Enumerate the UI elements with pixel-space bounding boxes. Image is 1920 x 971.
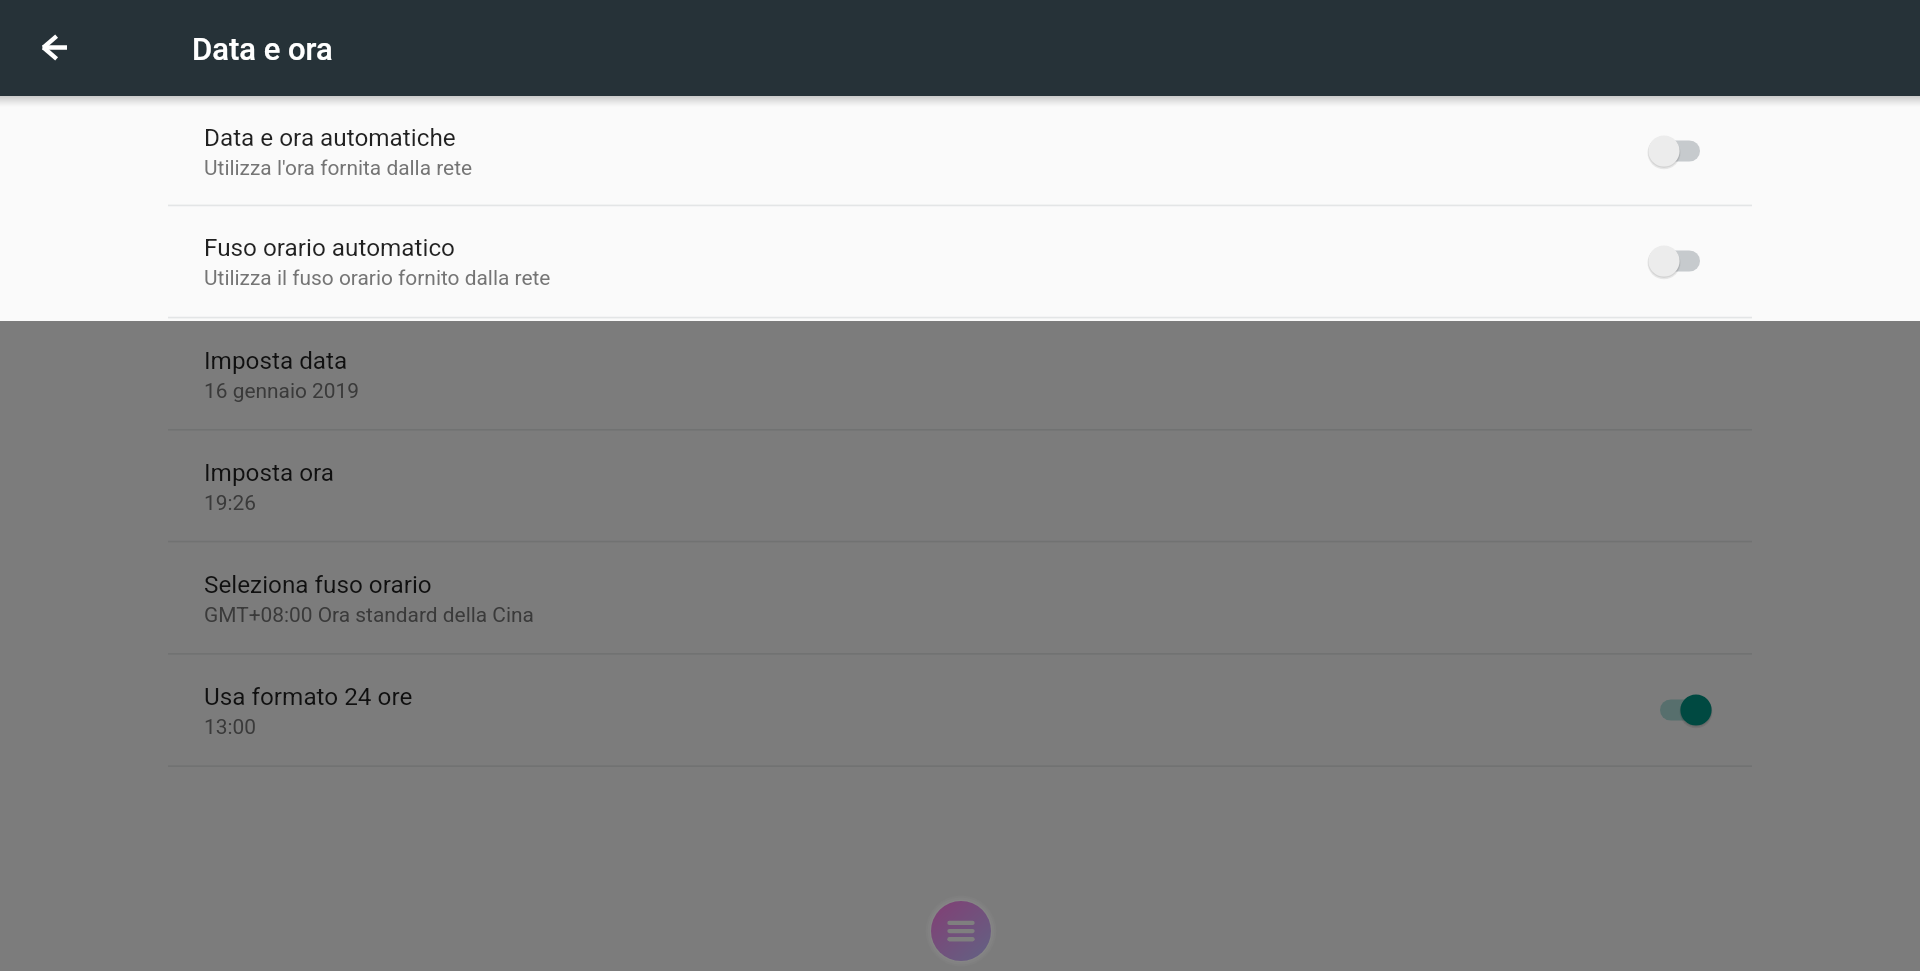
staticText: 13:00 xyxy=(204,715,257,739)
staticText: 19:26 xyxy=(204,491,257,515)
staticText: Imposta data xyxy=(204,346,348,374)
button[interactable]: Back xyxy=(22,15,86,79)
button[interactable]: Imposta ora xyxy=(0,430,1920,542)
staticText: GMT+08:00 Ora standard della Cina xyxy=(204,603,534,627)
staticText: Data e ora automatiche xyxy=(204,123,456,151)
button[interactable]: Fuso orario automatico xyxy=(0,205,1920,317)
staticText: 16 gennaio 2019 xyxy=(204,379,360,403)
button[interactable]: Imposta data xyxy=(0,318,1920,430)
staticText: Utilizza l'ora fornita dalla rete xyxy=(204,156,473,180)
button[interactable]: Toggle off xyxy=(1660,129,1716,173)
button[interactable]: Open menu xyxy=(926,896,996,966)
button[interactable]: Toggle on xyxy=(1660,688,1716,732)
staticText: Fuso orario automatico xyxy=(204,233,455,261)
button[interactable]: Toggle off xyxy=(1660,239,1716,283)
staticText: Utilizza il fuso orario fornito dalla re… xyxy=(204,266,551,290)
staticText: Imposta ora xyxy=(204,458,334,486)
button[interactable]: Usa formato 24 ore xyxy=(0,654,1920,766)
staticText: Data e ora xyxy=(192,31,333,67)
button[interactable]: Seleziona fuso orario xyxy=(0,542,1920,654)
staticText: Seleziona fuso orario xyxy=(204,570,432,598)
button[interactable]: Data e ora automatiche xyxy=(0,96,1920,206)
staticText: Usa formato 24 ore xyxy=(204,682,413,710)
